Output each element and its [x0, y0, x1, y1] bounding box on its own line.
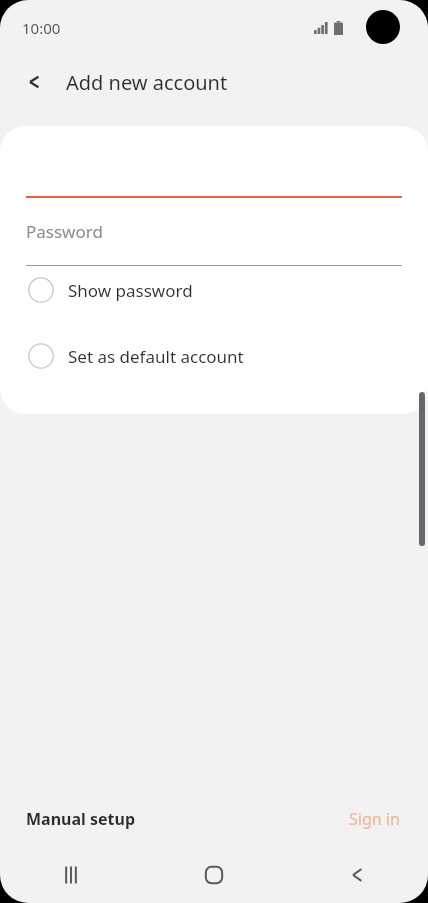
staticText: Manual setup — [26, 808, 136, 830]
button[interactable]: Recents — [0, 846, 142, 903]
button[interactable]: Password — [0, 220, 428, 266]
button[interactable]: Manual setup — [26, 808, 136, 830]
staticText: Set as default account — [68, 345, 244, 368]
staticText: Show password — [68, 279, 193, 302]
staticText: Add new account — [66, 69, 228, 96]
staticText: Sign in — [349, 808, 400, 830]
button[interactable]: Back — [14, 62, 54, 102]
button[interactable]: Set as default account — [0, 335, 428, 377]
staticText: Password — [26, 220, 103, 243]
staticText: 10:00 — [22, 18, 61, 38]
button[interactable]: Back — [285, 846, 428, 903]
button[interactable] — [0, 126, 428, 198]
button[interactable]: Home — [142, 846, 285, 903]
button[interactable]: Sign in — [349, 808, 400, 830]
button[interactable]: Show password — [0, 269, 428, 311]
